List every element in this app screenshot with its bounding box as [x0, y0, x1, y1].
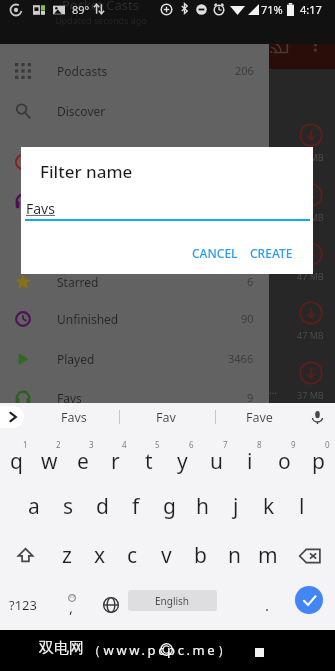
- button[interactable]: Fave: [219, 403, 299, 431]
- button[interactable]: 8: [233, 433, 267, 482]
- button[interactable]: h: [186, 482, 219, 531]
- staticText: 47 MB: [297, 270, 324, 282]
- button[interactable]: d: [85, 482, 119, 531]
- button[interactable]: Voice input: [306, 406, 328, 428]
- staticText: 6: [189, 439, 194, 450]
- button[interactable]: 3: [66, 433, 99, 482]
- button[interactable]: CANCEL: [184, 239, 246, 267]
- button[interactable]: Favs: [34, 403, 114, 431]
- staticText: Fave: [246, 409, 273, 426]
- staticText: CREATE: [250, 245, 293, 261]
- button[interactable]: v: [149, 531, 183, 580]
- staticText: f: [132, 492, 140, 521]
- button[interactable]: In Progress: [0, 181, 269, 220]
- button[interactable]: More suggestions: [0, 406, 24, 428]
- staticText: d: [96, 492, 109, 521]
- button[interactable]: Discover: [0, 91, 269, 130]
- staticText: u: [210, 447, 223, 476]
- button[interactable]: j: [219, 482, 252, 531]
- button[interactable]: Enter: [295, 586, 323, 614]
- button[interactable]: Comma and emoji: [52, 580, 90, 630]
- staticText: 206: [235, 63, 254, 78]
- button[interactable]: Cast: [270, 37, 288, 55]
- button[interactable]: .: [249, 580, 285, 630]
- button[interactable]: Favs: [0, 378, 269, 417]
- staticText: y: [177, 447, 188, 476]
- button[interactable]: English: [128, 590, 217, 611]
- staticText: a: [28, 492, 40, 521]
- button[interactable]: Fav: [126, 403, 206, 431]
- button[interactable]: New Releases: [0, 142, 269, 181]
- staticText: g: [163, 492, 176, 521]
- staticText: Favs: [61, 409, 87, 426]
- button[interactable]: Played: [0, 339, 269, 378]
- button[interactable]: n: [217, 531, 251, 580]
- button[interactable]: Unfinished: [0, 299, 269, 338]
- staticText: 3: [89, 439, 94, 450]
- staticText: 双电网: [39, 639, 84, 658]
- staticText: t: [145, 447, 153, 476]
- button[interactable]: Change language: [92, 580, 130, 630]
- staticText: 4: [122, 439, 127, 450]
- staticText: 9: [247, 390, 254, 405]
- button[interactable]: More options: [307, 34, 324, 56]
- staticText: l: [299, 492, 305, 521]
- staticText: Filter name: [40, 160, 133, 183]
- staticText: CANCEL: [192, 245, 238, 261]
- button[interactable]: Podcasts: [0, 51, 269, 90]
- button[interactable]: k: [252, 482, 285, 531]
- button[interactable]: 2: [33, 433, 66, 482]
- staticText: 6: [247, 274, 254, 289]
- button[interactable]: b: [183, 531, 217, 580]
- staticText: Favs: [26, 199, 55, 218]
- button[interactable]: CREATE: [242, 239, 301, 267]
- staticText: j: [233, 492, 239, 521]
- button[interactable]: 4: [99, 433, 132, 482]
- button[interactable]: l: [285, 482, 318, 531]
- button[interactable]: Backspace: [285, 531, 335, 580]
- staticText: k: [263, 492, 275, 521]
- button[interactable]: 9: [267, 433, 301, 482]
- button[interactable]: 0: [301, 433, 335, 482]
- staticText: Starred: [57, 274, 99, 290]
- staticText: English: [155, 594, 190, 608]
- button[interactable]: m: [251, 531, 285, 580]
- staticText: 5: [155, 439, 160, 450]
- staticText: q: [10, 447, 23, 476]
- staticText: w: [41, 447, 58, 476]
- button[interactable]: x: [83, 531, 116, 580]
- staticText: 47 MB: [297, 151, 324, 163]
- button[interactable]: Downloads: [0, 221, 269, 260]
- staticText: b: [194, 541, 207, 570]
- staticText: 47 MB: [297, 211, 324, 223]
- staticText: （www.pcpc.me）: [88, 641, 233, 659]
- button[interactable]: c: [116, 531, 149, 580]
- staticText: Pocket Casts: [62, 0, 139, 14]
- button[interactable]: g: [153, 482, 186, 531]
- staticText: 4:17: [300, 2, 322, 17]
- staticText: x: [94, 541, 106, 570]
- button[interactable]: Starred: [0, 262, 269, 301]
- staticText: 37 MB: [297, 389, 324, 401]
- staticText: s: [63, 492, 74, 521]
- staticText: h: [196, 492, 209, 521]
- staticText: p: [312, 447, 325, 476]
- staticText: 47 MB: [297, 329, 324, 341]
- staticText: o: [278, 447, 291, 476]
- button[interactable]: ?123: [0, 580, 46, 630]
- staticText: e: [77, 447, 89, 476]
- staticText: Unfinished: [57, 311, 119, 327]
- staticText: v: [161, 541, 172, 570]
- button[interactable]: Shift: [0, 531, 50, 580]
- button[interactable]: s: [51, 482, 85, 531]
- staticText: m: [258, 541, 278, 570]
- button[interactable]: 6: [165, 433, 199, 482]
- button[interactable]: f: [119, 482, 153, 531]
- staticText: ,: [69, 597, 74, 617]
- button[interactable]: 1: [0, 433, 33, 482]
- button[interactable]: 5: [132, 433, 165, 482]
- button[interactable]: 7: [199, 433, 233, 482]
- button[interactable]: a: [17, 482, 51, 531]
- button[interactable]: z: [50, 531, 83, 580]
